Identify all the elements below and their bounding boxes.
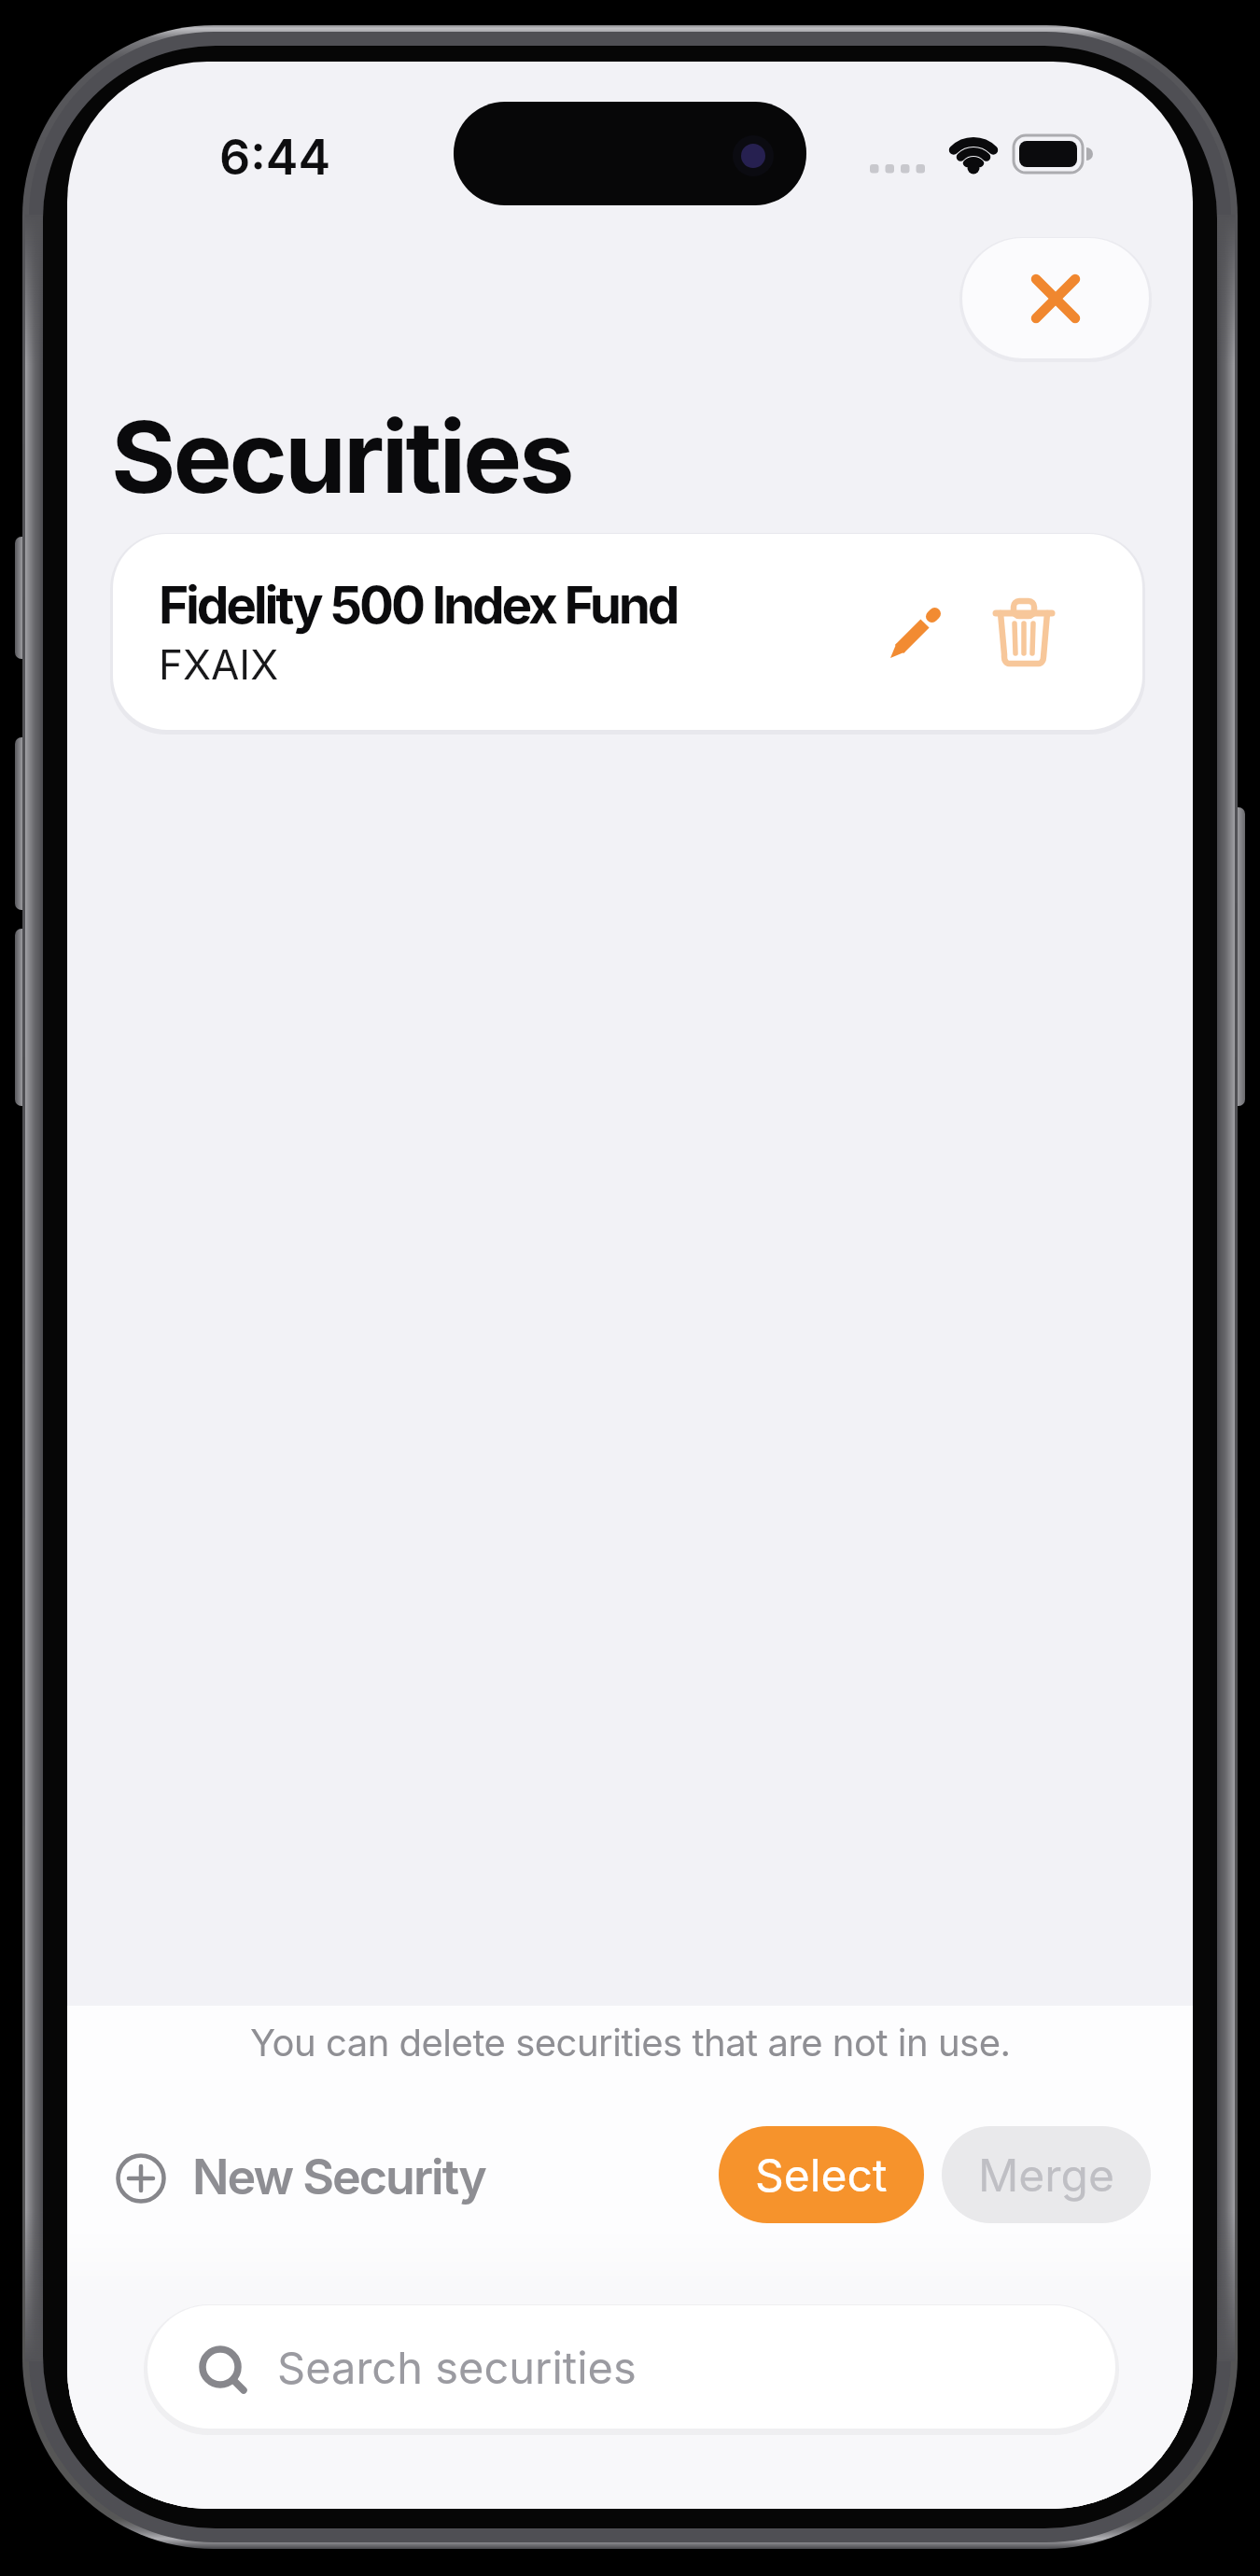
staticText: Securities [111, 397, 572, 516]
button[interactable]: Search securities [147, 2305, 1115, 2429]
button[interactable] [962, 238, 1149, 358]
staticText: Fidelity 500 Index Fund [159, 574, 678, 637]
button[interactable]: New Security [105, 2141, 553, 2216]
button[interactable]: Fidelity 500 Index Fund [113, 534, 1142, 730]
button[interactable] [994, 598, 1054, 671]
staticText: Select [755, 2148, 888, 2202]
staticText: Search securities [277, 2341, 637, 2394]
button[interactable] [889, 606, 943, 660]
staticText: You can delete securities that are not i… [250, 2020, 1011, 2065]
button[interactable]: Select [719, 2126, 924, 2223]
staticText: Merge [978, 2148, 1115, 2202]
button[interactable]: Merge [942, 2126, 1151, 2223]
staticText: New Security [192, 2148, 485, 2206]
staticText: FXAIX [159, 639, 279, 689]
staticText: 6:44 [219, 128, 331, 184]
